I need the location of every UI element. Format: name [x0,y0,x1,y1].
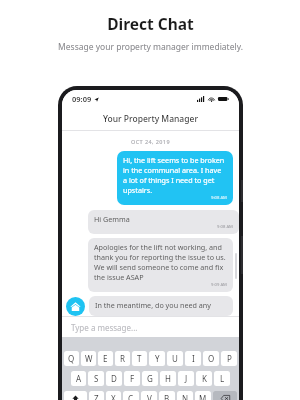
button[interactable]: Z [89,391,104,400]
staticText: Z [94,393,99,400]
button[interactable]: A [71,371,86,386]
staticText: U [172,353,178,364]
staticText: M [199,393,207,400]
staticText: N [182,393,189,400]
button[interactable]: H [160,371,176,386]
button[interactable]: Shift [64,391,87,400]
button[interactable]: I [185,351,201,366]
button[interactable]: T [132,351,147,366]
button[interactable]: G [142,371,158,386]
staticText: K [202,373,207,384]
staticText: J [185,373,188,384]
button[interactable]: In the meantime, do you need any help wi… [89,296,233,316]
staticText: 09:09 [72,94,92,104]
button[interactable]: P [221,351,237,366]
button[interactable]: Type a message... [62,317,239,337]
button[interactable]: C [123,391,139,400]
staticText: E [103,353,108,364]
other: Property manager avatar [66,297,85,316]
staticText: W [85,353,93,364]
staticText: 9:09 AM [211,282,227,288]
staticText: OCT 24, 2019 [131,138,170,145]
button[interactable]: F [124,371,140,386]
staticText: Type a message... [71,322,138,333]
staticText: R [120,353,125,364]
staticText: 9:08 AM [211,195,227,201]
button[interactable]: R [115,351,130,366]
staticText: D [111,373,117,384]
button[interactable]: O [203,351,219,366]
staticText: Q [68,353,75,364]
button[interactable]: E [98,351,113,366]
button[interactable]: B [159,391,175,400]
staticText: 9:08 AM [217,224,233,230]
staticText: H [165,373,171,384]
button[interactable]: J [178,371,194,386]
staticText: In the meantime, do you need any help wi… [95,300,227,312]
button[interactable]: D [106,371,122,386]
staticText: B [164,393,170,400]
button[interactable]: S [88,371,104,386]
button[interactable]: Your Property Manager [62,107,239,130]
button[interactable]: L [214,371,230,386]
button[interactable]: Apologies for the lift not working, and … [88,238,233,292]
staticText: V [147,393,152,400]
staticText: Apologies for the lift not working, and … [94,242,227,282]
staticText: S [94,373,99,384]
staticText: G [147,373,153,384]
staticText: L [220,373,225,384]
button[interactable]: K [196,371,212,386]
staticText: C [128,393,134,400]
staticText: F [130,373,135,384]
staticText: Hi Gemma [94,214,130,224]
staticText: Message your property manager immediatel… [58,41,243,53]
button[interactable]: X [106,391,121,400]
button[interactable]: Backspace [213,391,237,400]
button[interactable]: Hi, the lift seems to be broken in the c… [117,151,233,205]
button[interactable]: M [195,391,211,400]
staticText: X [111,393,116,400]
staticText: I [192,353,195,364]
button[interactable]: U [167,351,183,366]
button[interactable]: Q [64,351,79,366]
button[interactable]: N [177,391,193,400]
staticText: Hi, the lift seems to be broken in the c… [123,155,227,195]
staticText: Y [155,353,160,364]
button[interactable]: Y [149,351,165,366]
staticText: O [208,353,215,364]
staticText: Direct Chat [107,13,194,34]
staticText: T [137,353,142,364]
staticText: A [76,373,82,384]
button[interactable]: W [81,351,96,366]
staticText: P [227,353,232,364]
button[interactable]: Hi Gemma [88,210,239,234]
staticText: Your Property Manager [103,113,198,125]
button[interactable]: V [141,391,157,400]
